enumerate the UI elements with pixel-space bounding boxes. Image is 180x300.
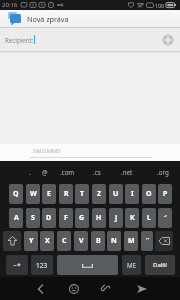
button[interactable]: .net bbox=[117, 166, 136, 178]
staticText: D bbox=[46, 213, 52, 223]
staticText: O bbox=[146, 189, 152, 199]
staticText: X bbox=[45, 236, 50, 246]
staticText: U bbox=[113, 189, 119, 199]
button[interactable] bbox=[134, 281, 149, 296]
button[interactable]: U bbox=[109, 184, 123, 204]
staticText: SMS/MMS bbox=[33, 147, 61, 155]
staticText: Nová zpráva bbox=[27, 14, 69, 24]
button[interactable]: Q bbox=[9, 184, 23, 204]
button[interactable]: ¨ bbox=[141, 231, 153, 251]
button[interactable]: N bbox=[107, 231, 121, 251]
button[interactable]: R bbox=[59, 184, 73, 204]
staticText: I bbox=[131, 189, 134, 199]
button[interactable]: D bbox=[42, 208, 56, 228]
staticText: F bbox=[64, 213, 68, 223]
staticText: Y bbox=[29, 236, 34, 246]
button[interactable]: ´ bbox=[158, 208, 172, 228]
button[interactable]: @ bbox=[40, 166, 50, 178]
staticText: B bbox=[96, 236, 101, 246]
staticText: V bbox=[79, 236, 84, 246]
staticText: ´ bbox=[164, 213, 167, 224]
button[interactable]: O bbox=[142, 184, 156, 204]
button[interactable]: M bbox=[124, 231, 138, 251]
staticText: K bbox=[130, 213, 135, 223]
button[interactable]: E bbox=[42, 184, 56, 204]
button[interactable]: V bbox=[74, 231, 88, 251]
button[interactable]: A bbox=[9, 208, 23, 228]
staticText: C bbox=[62, 236, 67, 246]
staticText: ¨ bbox=[145, 236, 150, 247]
button[interactable] bbox=[3, 231, 21, 251]
staticText: ~* bbox=[13, 261, 21, 270]
staticText: E bbox=[47, 189, 51, 199]
staticText: .cs bbox=[93, 168, 101, 176]
staticText: J bbox=[115, 213, 118, 223]
staticText: Recipient: bbox=[5, 36, 34, 44]
button[interactable]: J bbox=[109, 208, 123, 228]
button[interactable]: L bbox=[142, 208, 156, 228]
staticText: P bbox=[163, 189, 168, 199]
button[interactable]: .cs bbox=[89, 166, 105, 178]
button[interactable]: B bbox=[91, 231, 105, 251]
staticText: @ bbox=[42, 168, 48, 176]
button[interactable]: C bbox=[57, 231, 71, 251]
button[interactable]: H bbox=[92, 208, 106, 228]
button[interactable]: W bbox=[26, 184, 40, 204]
button[interactable]: ~* bbox=[6, 255, 28, 275]
button[interactable]: F bbox=[59, 208, 73, 228]
button[interactable]: Y bbox=[24, 231, 38, 251]
button[interactable]: . bbox=[26, 166, 34, 178]
button[interactable]: K bbox=[125, 208, 139, 228]
staticText: ME bbox=[127, 261, 137, 269]
button[interactable]: Recipient: bbox=[0, 28, 180, 52]
staticText: .org bbox=[157, 168, 169, 176]
staticText: Z bbox=[97, 189, 102, 199]
staticText: T bbox=[80, 189, 85, 199]
staticText: 20:16 bbox=[2, 1, 18, 9]
button[interactable]: P bbox=[158, 184, 172, 204]
staticText: G bbox=[79, 213, 85, 223]
button[interactable]: Další bbox=[145, 255, 175, 275]
button[interactable] bbox=[155, 231, 173, 251]
button[interactable]: 123 bbox=[31, 255, 53, 275]
button[interactable]: Z bbox=[92, 184, 106, 204]
staticText: 100 bbox=[155, 2, 165, 9]
staticText: R bbox=[64, 189, 69, 199]
button[interactable]: S bbox=[26, 208, 40, 228]
staticText: S bbox=[31, 213, 35, 223]
button[interactable]: SMS/MMS bbox=[0, 144, 180, 162]
button[interactable] bbox=[34, 281, 47, 296]
staticText: .net bbox=[121, 168, 133, 176]
staticText: N bbox=[111, 236, 117, 246]
staticText: Q bbox=[13, 189, 19, 199]
button[interactable]: T bbox=[75, 184, 89, 204]
staticText: H bbox=[96, 213, 102, 223]
staticText: W bbox=[30, 189, 37, 199]
button[interactable]: ME bbox=[122, 255, 141, 275]
button[interactable] bbox=[67, 281, 81, 296]
staticText: . bbox=[29, 168, 31, 176]
button[interactable]: .org bbox=[153, 166, 173, 178]
staticText: A bbox=[14, 213, 19, 223]
button[interactable] bbox=[57, 255, 118, 275]
button[interactable]: .com bbox=[56, 166, 78, 178]
staticText: Další bbox=[153, 261, 167, 269]
button[interactable]: X bbox=[40, 231, 54, 251]
button[interactable]: I bbox=[125, 184, 139, 204]
staticText: L bbox=[147, 213, 151, 223]
staticText: .com bbox=[60, 168, 75, 176]
staticText: M bbox=[128, 236, 135, 246]
button[interactable] bbox=[99, 281, 113, 296]
staticText: 123 bbox=[36, 261, 48, 270]
button[interactable]: Nová zpráva bbox=[0, 10, 180, 28]
button[interactable]: G bbox=[75, 208, 89, 228]
